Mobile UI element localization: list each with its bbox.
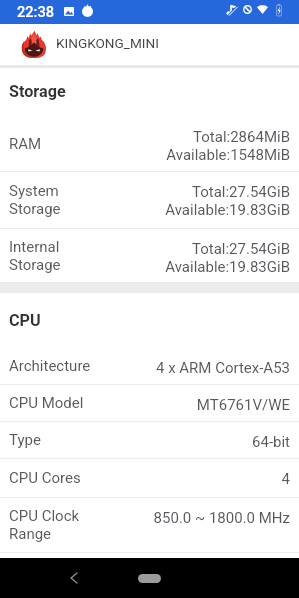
staticText: Storage bbox=[9, 82, 66, 101]
button[interactable]: CPU Model bbox=[0, 385, 299, 422]
staticText: CPU Model bbox=[9, 394, 84, 412]
staticText: CPU bbox=[9, 311, 41, 330]
staticText: CPU Cores bbox=[9, 469, 81, 487]
button[interactable]: RAM bbox=[0, 117, 299, 172]
staticText: 64-bit bbox=[252, 433, 290, 451]
staticText: System Storage bbox=[9, 182, 61, 218]
button[interactable]: CPU Clock Range bbox=[0, 498, 299, 553]
staticText: RAM bbox=[9, 135, 42, 153]
staticText: Internal Storage bbox=[9, 238, 61, 274]
staticText: KINGKONG_MINI bbox=[56, 35, 159, 51]
button[interactable]: System Storage bbox=[0, 172, 299, 229]
staticText: CPU Clock Range bbox=[9, 507, 80, 543]
button[interactable]: Home bbox=[131, 568, 167, 588]
staticText: 4 x ARM Cortex-A53 bbox=[155, 359, 290, 377]
staticText: 22:38 bbox=[17, 3, 55, 20]
staticText: 850.0 ~ 1800.0 MHz bbox=[153, 509, 290, 527]
staticText: Type bbox=[9, 431, 41, 449]
staticText: Architecture bbox=[9, 357, 91, 375]
staticText: Total:2864MiB Available:1548MiB bbox=[166, 128, 290, 164]
staticText: Total:27.54GiB Available:19.83GiB bbox=[165, 183, 290, 219]
staticText: MT6761V/WE bbox=[196, 396, 290, 414]
staticText: Total:27.54GiB Available:19.83GiB bbox=[165, 240, 290, 276]
staticText: 4 bbox=[281, 470, 290, 488]
button[interactable]: Type bbox=[0, 422, 299, 459]
button[interactable]: Back bbox=[62, 565, 86, 591]
button[interactable]: Architecture bbox=[0, 348, 299, 385]
button[interactable]: Internal Storage bbox=[0, 229, 299, 282]
button[interactable]: CPU Cores bbox=[0, 459, 299, 498]
